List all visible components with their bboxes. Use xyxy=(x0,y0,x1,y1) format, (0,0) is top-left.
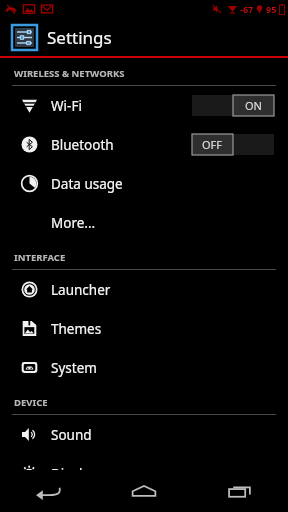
staticText: Themes xyxy=(51,320,102,338)
button[interactable]: Data usage xyxy=(0,164,288,203)
button[interactable]: Display xyxy=(0,454,288,493)
button[interactable]: Back xyxy=(0,470,96,512)
staticText: More... xyxy=(51,214,96,232)
button[interactable]: Toggle off xyxy=(192,134,274,155)
button[interactable]: Wi-Fi xyxy=(0,86,288,125)
staticText: Data usage xyxy=(51,175,123,193)
staticText: 95 xyxy=(266,3,277,15)
button[interactable]: Home xyxy=(96,470,192,512)
staticText: Launcher xyxy=(51,281,111,299)
staticText: Wi-Fi xyxy=(51,97,82,115)
staticText: WIRELESS & NETWORKS xyxy=(14,67,125,80)
button[interactable]: Recent apps xyxy=(192,470,288,512)
staticText: Bluetooth xyxy=(51,136,114,154)
button[interactable]: Toggle on xyxy=(192,95,274,116)
staticText: Settings xyxy=(47,26,112,49)
button[interactable]: System xyxy=(0,348,288,387)
staticText: -67 xyxy=(240,3,254,15)
button[interactable]: Bluetooth xyxy=(0,125,288,164)
staticText: OFF xyxy=(202,137,223,152)
staticText: System xyxy=(51,359,97,377)
staticText: INTERFACE xyxy=(14,251,66,264)
button[interactable]: Themes xyxy=(0,309,288,348)
button[interactable]: Launcher xyxy=(0,270,288,309)
staticText: Sound xyxy=(51,426,92,444)
staticText: Display xyxy=(51,465,98,483)
staticText: ON xyxy=(245,98,262,113)
staticText: DEVICE xyxy=(14,396,48,409)
button[interactable]: Sound xyxy=(0,415,288,454)
button[interactable]: More... xyxy=(0,203,288,242)
